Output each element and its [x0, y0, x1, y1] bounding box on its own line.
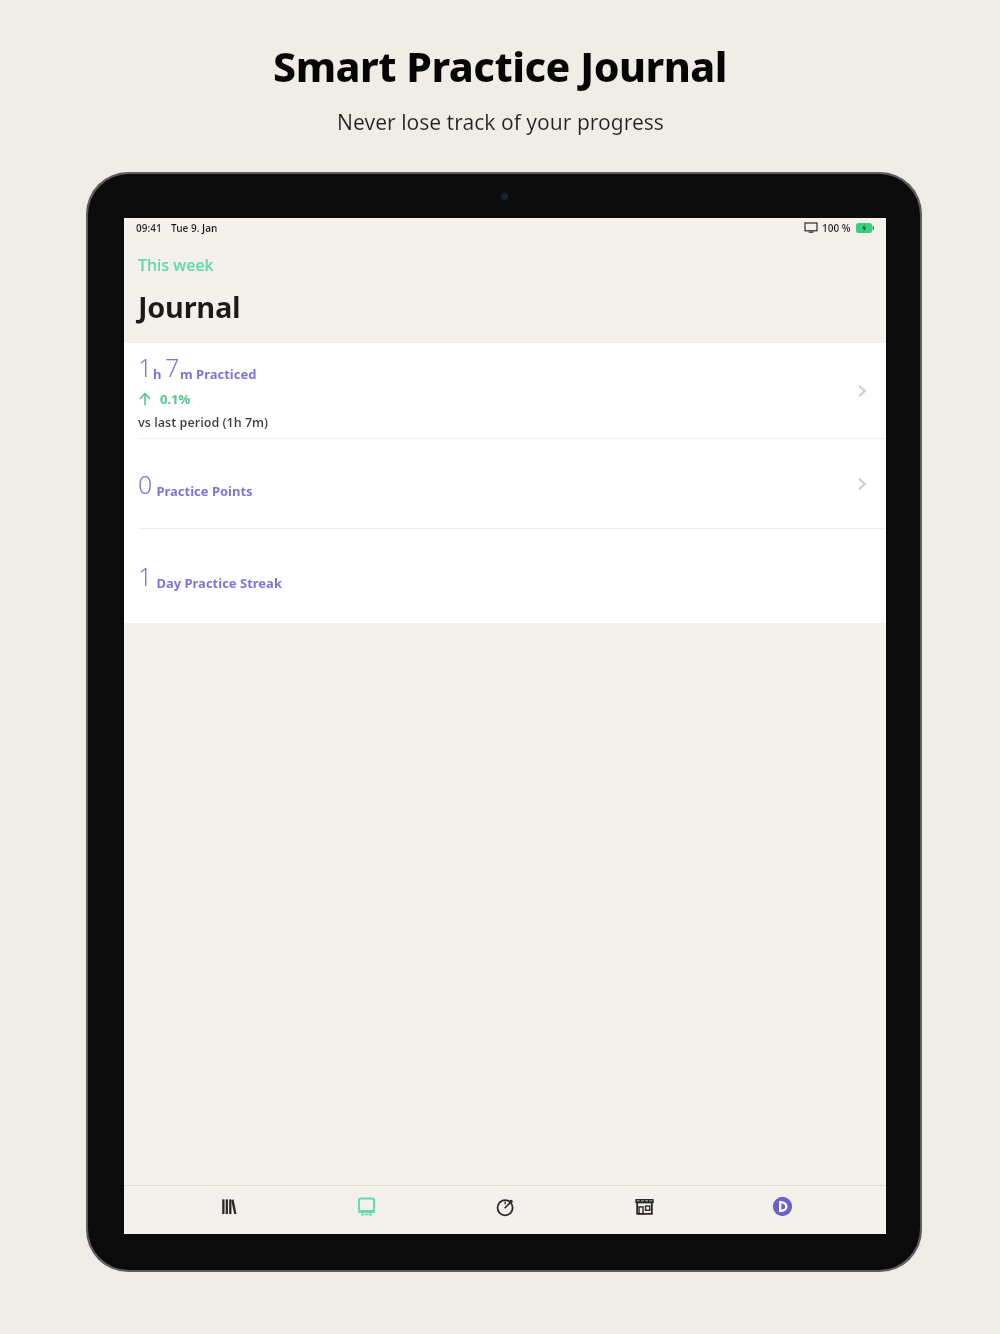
- button[interactable]: 1: [124, 343, 886, 438]
- button[interactable]: 1: [124, 529, 886, 623]
- staticText: 1: [138, 559, 153, 593]
- staticText: 7: [165, 350, 180, 384]
- staticText: Practice Points: [153, 482, 253, 500]
- staticText: Tue 9. Jan: [171, 221, 218, 235]
- button[interactable]: Profile: [747, 1186, 817, 1226]
- button[interactable]: Store: [609, 1186, 679, 1226]
- button[interactable]: 0: [124, 439, 886, 528]
- button[interactable]: Journal: [331, 1186, 401, 1226]
- staticText: 0.1%: [160, 390, 191, 408]
- staticText: 1: [138, 350, 153, 384]
- staticText: h: [153, 365, 165, 383]
- staticText: Day Practice Streak: [153, 574, 282, 592]
- button[interactable]: Metronome: [470, 1186, 540, 1226]
- staticText: 100 %: [822, 221, 851, 235]
- staticText: Never lose track of your progress: [337, 108, 664, 137]
- staticText: 09:41: [136, 221, 162, 235]
- staticText: vs last period (1h 7m): [138, 414, 269, 431]
- button[interactable]: Library: [193, 1186, 263, 1226]
- staticText: Smart Practice Journal: [273, 38, 727, 94]
- staticText: This week: [138, 254, 214, 276]
- staticText: 0: [138, 467, 153, 501]
- staticText: m Practiced: [180, 365, 257, 383]
- staticText: Journal: [138, 287, 241, 326]
